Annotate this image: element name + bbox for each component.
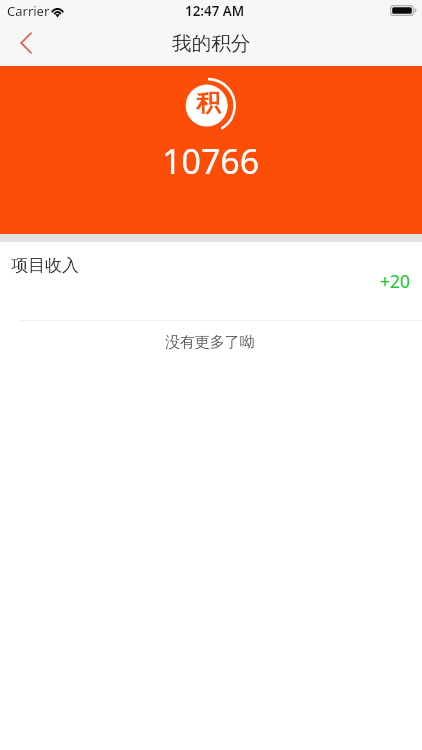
staticText: 积 [196,88,221,118]
staticText: 项目收入 [11,255,79,276]
staticText: Carrier [7,2,50,20]
staticText: +20 [380,269,411,293]
staticText: 我的积分 [172,31,251,56]
other: Battery full [390,5,416,16]
button[interactable]: Points badge [181,78,237,134]
button[interactable]: Back [0,26,52,66]
staticText: 12:47 AM [185,2,245,20]
staticText: 10766 [162,138,260,184]
staticText: 没有更多了呦 [165,333,255,352]
other: Wi-Fi signal [50,4,66,16]
button[interactable]: 项目收入 [0,242,422,320]
